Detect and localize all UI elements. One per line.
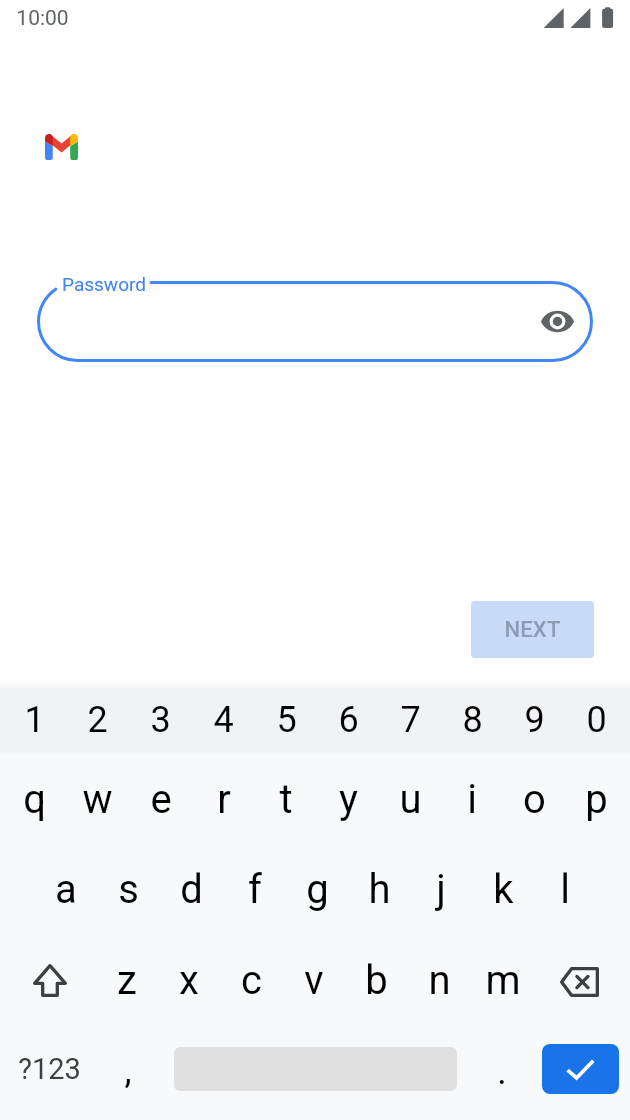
button[interactable]: r — [192, 754, 255, 844]
staticText: t — [279, 776, 293, 823]
staticText: s — [118, 866, 139, 913]
button[interactable]: t — [255, 754, 317, 844]
button[interactable]: 5 — [255, 675, 317, 765]
staticText: 6 — [338, 699, 359, 741]
button[interactable]: Shift — [0, 935, 96, 1025]
button[interactable]: k — [472, 844, 534, 934]
button[interactable]: g — [286, 844, 348, 934]
staticText: z — [117, 957, 137, 1004]
button[interactable]: a — [34, 844, 97, 934]
staticText: a — [55, 866, 77, 913]
staticText: 2 — [87, 699, 108, 741]
staticText: i — [467, 776, 477, 823]
staticText: 5 — [276, 699, 297, 741]
staticText: 0 — [586, 699, 607, 741]
button[interactable]: x — [158, 935, 220, 1025]
button[interactable]: 1 — [3, 675, 66, 765]
staticText: u — [399, 776, 422, 823]
staticText: c — [241, 957, 262, 1004]
button[interactable]: i — [441, 754, 503, 844]
staticText: v — [304, 957, 324, 1004]
button[interactable]: 3 — [129, 675, 192, 765]
button[interactable]: u — [379, 754, 441, 844]
staticText: ?123 — [18, 1052, 81, 1086]
staticText: g — [306, 866, 329, 913]
staticText: , — [124, 1050, 132, 1092]
staticText: p — [585, 776, 608, 823]
button[interactable]: l — [534, 844, 596, 934]
button[interactable]: n — [408, 935, 471, 1025]
button[interactable]: 0 — [565, 675, 627, 765]
staticText: 3 — [150, 699, 171, 741]
button[interactable]: s — [97, 844, 160, 934]
button[interactable]: . — [474, 1027, 530, 1117]
button[interactable]: 6 — [317, 675, 379, 765]
button[interactable]: j — [410, 844, 472, 934]
button[interactable]: , — [100, 1026, 156, 1116]
button[interactable]: d — [160, 844, 223, 934]
button[interactable]: q — [3, 754, 66, 844]
button[interactable]: f — [223, 844, 286, 934]
button[interactable]: h — [348, 844, 410, 934]
staticText: y — [339, 776, 358, 823]
button[interactable]: w — [66, 754, 129, 844]
staticText: q — [23, 776, 46, 823]
button[interactable]: NEXT — [471, 601, 594, 658]
button[interactable]: Backspace — [534, 935, 630, 1025]
staticText: n — [428, 957, 451, 1004]
staticText: 7 — [400, 699, 421, 741]
staticText: b — [365, 957, 388, 1004]
button[interactable]: Password field — [37, 281, 593, 362]
staticText: o — [523, 776, 546, 823]
staticText: w — [82, 776, 113, 823]
button[interactable]: m — [471, 935, 534, 1025]
staticText: 8 — [462, 699, 483, 741]
staticText: e — [150, 776, 172, 823]
staticText: NEXT — [504, 617, 561, 643]
button[interactable]: Show password — [533, 297, 582, 346]
button[interactable]: z — [96, 935, 158, 1025]
button[interactable]: c — [220, 935, 282, 1025]
staticText: f — [248, 866, 262, 913]
button[interactable]: e — [129, 754, 192, 844]
staticText: x — [179, 957, 199, 1004]
staticText: l — [560, 866, 570, 913]
button[interactable]: p — [565, 754, 627, 844]
staticText: 10:00 — [16, 6, 69, 31]
button[interactable]: 7 — [379, 675, 441, 765]
button[interactable]: Done — [542, 1044, 619, 1094]
button[interactable]: y — [317, 754, 379, 844]
button[interactable]: 4 — [192, 675, 255, 765]
staticText: h — [368, 866, 391, 913]
button[interactable]: 8 — [441, 675, 503, 765]
staticText: 4 — [213, 699, 234, 741]
button[interactable]: 2 — [66, 675, 129, 765]
button[interactable]: v — [282, 935, 345, 1025]
staticText: m — [485, 957, 521, 1004]
staticText: . — [497, 1051, 507, 1093]
staticText: k — [493, 866, 514, 913]
staticText: 1 — [24, 699, 45, 741]
button[interactable]: 9 — [503, 675, 565, 765]
staticText: d — [180, 866, 203, 913]
staticText: Password — [62, 273, 146, 295]
staticText: 9 — [524, 699, 545, 741]
button[interactable]: b — [345, 935, 408, 1025]
staticText: r — [217, 776, 231, 823]
staticText: j — [436, 866, 446, 913]
button[interactable]: o — [503, 754, 565, 844]
button[interactable]: ?123 — [0, 1024, 99, 1114]
